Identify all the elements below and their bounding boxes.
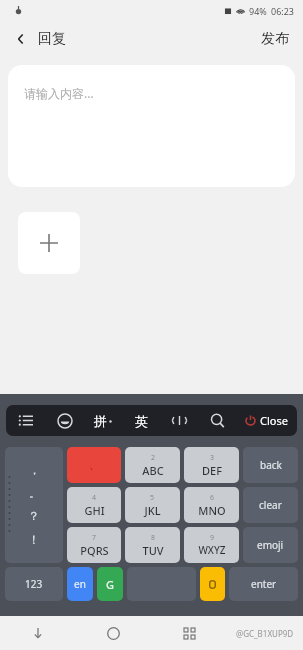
staticText: 7 xyxy=(92,533,97,543)
staticText: 英 xyxy=(135,413,148,429)
button[interactable]: emoji xyxy=(243,527,298,563)
button[interactable]: 拼 xyxy=(84,405,122,436)
button[interactable]: Clipboard xyxy=(200,567,225,601)
button[interactable]: clear xyxy=(243,487,298,523)
staticText: Close xyxy=(260,413,288,428)
other: Back xyxy=(14,32,28,46)
button[interactable]: 请输入内容... xyxy=(8,65,295,187)
staticText: @GC_B1XUP9D xyxy=(236,628,294,639)
staticText: 请输入内容... xyxy=(24,85,94,101)
button[interactable]: back xyxy=(243,447,298,483)
button[interactable]: Back xyxy=(10,26,70,52)
staticText: 发布 xyxy=(261,30,289,48)
button[interactable]: Close xyxy=(236,405,297,436)
staticText: 、 xyxy=(89,458,100,472)
button[interactable]: 3 xyxy=(184,447,239,483)
button[interactable]: en xyxy=(67,567,93,601)
staticText: DEF xyxy=(202,463,222,478)
staticText: 94% xyxy=(249,5,267,17)
button[interactable]: 4 xyxy=(67,487,121,523)
button[interactable]: 2 xyxy=(125,447,180,483)
staticText: ？ xyxy=(28,508,40,523)
button[interactable]: Menu xyxy=(6,405,45,436)
staticText: 123 xyxy=(25,577,43,591)
staticText: 拼 xyxy=(94,413,107,429)
button[interactable]: 7 xyxy=(67,527,121,563)
staticText: MNO xyxy=(198,503,226,518)
button[interactable]: Resize keyboard xyxy=(160,405,198,436)
staticText: 2 xyxy=(151,453,156,463)
button[interactable]: 123 xyxy=(5,567,63,601)
button[interactable]: Hide keyboard xyxy=(0,616,75,650)
staticText: ABC xyxy=(142,463,164,478)
staticText: 6 xyxy=(210,493,215,503)
button[interactable]: 发布 xyxy=(257,26,293,52)
staticText: enter xyxy=(251,577,277,591)
button[interactable]: 6 xyxy=(184,487,239,523)
staticText: en xyxy=(74,577,86,591)
staticText: 06:23 xyxy=(271,5,295,17)
staticText: TUV xyxy=(142,543,164,558)
staticText: JKL xyxy=(144,503,161,518)
button[interactable]: G xyxy=(97,567,123,601)
button[interactable]: Recents xyxy=(151,616,227,650)
staticText: 9 xyxy=(210,533,215,543)
button[interactable]: 英 xyxy=(122,405,160,436)
staticText: emoji xyxy=(257,538,284,552)
staticText: clear xyxy=(259,498,282,512)
button[interactable]: Home xyxy=(75,616,151,650)
button[interactable]: ， xyxy=(5,447,63,563)
button[interactable]: Emoji theme xyxy=(45,405,84,436)
staticText: 3 xyxy=(210,453,215,463)
staticText: 5 xyxy=(150,493,155,503)
staticText: PQRS xyxy=(80,543,109,558)
staticText: back xyxy=(260,458,282,472)
staticText: ， xyxy=(29,463,40,477)
button[interactable]: 、 xyxy=(67,447,121,483)
button[interactable]: 5 xyxy=(125,487,180,523)
staticText: WXYZ xyxy=(198,543,226,557)
button[interactable]: Search xyxy=(198,405,236,436)
staticText: 回复 xyxy=(38,30,66,48)
staticText: 8 xyxy=(151,533,156,543)
staticText: 。 xyxy=(29,486,40,500)
button[interactable]: 8 xyxy=(125,527,180,563)
button[interactable]: 9 xyxy=(184,527,239,563)
staticText: GHI xyxy=(84,503,105,518)
staticText: 4 xyxy=(92,493,97,503)
button[interactable]: enter xyxy=(229,567,298,601)
staticText: ！ xyxy=(28,532,40,547)
button[interactable]: Add image xyxy=(18,212,80,274)
staticText: G xyxy=(106,577,114,592)
